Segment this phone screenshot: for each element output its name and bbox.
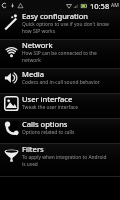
staticText: 10:58 xyxy=(90,1,110,11)
button[interactable]: Filters xyxy=(0,144,120,177)
staticText: User interface xyxy=(22,94,73,104)
button[interactable]: Calls options xyxy=(0,119,120,144)
staticText: Calls options xyxy=(22,119,68,129)
button[interactable]: User interface xyxy=(0,94,120,119)
staticText: Codecs and in-call sound behavior xyxy=(22,79,100,86)
staticText: Options related to calls xyxy=(22,129,75,136)
button[interactable]: Media xyxy=(0,69,120,94)
button[interactable]: Easy configuration xyxy=(0,11,120,40)
staticText: Filters xyxy=(22,144,44,154)
staticText: Media xyxy=(22,69,45,79)
staticText: AM xyxy=(111,2,119,9)
staticText: Easy configuration xyxy=(22,11,89,21)
staticText: Network xyxy=(22,40,53,50)
button[interactable]: Network xyxy=(0,40,120,69)
staticText: How SIP can be connected to the network xyxy=(22,50,110,63)
staticText: Tweak the user interface xyxy=(22,104,78,111)
staticText: To apply when integration to Android is … xyxy=(22,154,110,167)
staticText: Quick options to use if you don't know h… xyxy=(22,21,110,34)
